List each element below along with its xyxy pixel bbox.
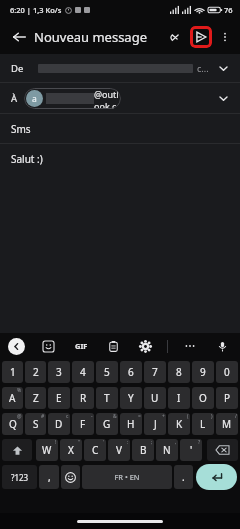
staticText: Nouveau message (34, 28, 147, 46)
button[interactable]: Masquer la barre d'outils (8, 338, 25, 355)
staticText: FR • EN (114, 472, 140, 482)
button[interactable]: N (156, 439, 178, 461)
button[interactable]: 1 (2, 361, 23, 383)
staticText: : (127, 439, 129, 446)
staticText: ? (198, 439, 201, 446)
button[interactable]: 6 (120, 361, 142, 383)
button[interactable]: Plus (180, 336, 200, 356)
staticText: H (127, 417, 135, 431)
button[interactable]: Plus d'options (214, 26, 236, 48)
button[interactable]: 0 (216, 361, 238, 383)
button[interactable]: W (36, 439, 58, 461)
button[interactable]: Entrée (196, 464, 237, 490)
staticText: , (175, 439, 177, 446)
button[interactable]: Emoji (61, 465, 80, 489)
staticText: ' (103, 439, 105, 446)
staticText: ; (151, 439, 153, 446)
button[interactable]: A (2, 387, 23, 409)
button[interactable]: P (216, 387, 238, 409)
staticText: / (235, 413, 237, 420)
staticText: U (151, 391, 159, 405)
staticText: Salut :) (11, 152, 43, 166)
button[interactable]: 4 (72, 361, 94, 383)
staticText: 1 (10, 365, 16, 379)
staticText: I (177, 391, 181, 405)
button[interactable]: À (0, 83, 240, 113)
staticText: - (91, 413, 93, 420)
staticText: " (78, 439, 81, 446)
staticText: , (48, 470, 51, 484)
staticText: E (56, 391, 62, 405)
button[interactable]: X (60, 439, 82, 461)
staticText: 4 (80, 365, 86, 379)
staticText: a (32, 93, 37, 105)
button[interactable]: D (48, 413, 70, 435)
button[interactable]: 3 (48, 361, 70, 383)
staticText: W (42, 443, 52, 457)
button[interactable]: Point (174, 465, 193, 489)
button[interactable]: Majuscule (2, 439, 32, 461)
button[interactable]: C (84, 439, 106, 461)
button[interactable]: U (144, 387, 166, 409)
button[interactable]: Paramètres (135, 336, 155, 356)
button[interactable]: De (0, 54, 240, 82)
button[interactable]: M (216, 413, 238, 435)
button[interactable]: 2 (25, 361, 46, 383)
button[interactable]: V (108, 439, 130, 461)
button[interactable]: G (96, 413, 118, 435)
staticText: ' (190, 443, 193, 457)
staticText: D (55, 417, 63, 431)
button[interactable]: L (192, 413, 214, 435)
button[interactable]: ' (180, 439, 202, 461)
button[interactable]: R (72, 387, 94, 409)
button[interactable]: O (192, 387, 214, 409)
button[interactable]: S (25, 413, 46, 435)
button[interactable]: 5 (96, 361, 118, 383)
staticText: ) (211, 413, 213, 420)
staticText: V (116, 443, 122, 457)
staticText: 0 (224, 365, 230, 379)
button[interactable]: I (168, 387, 190, 409)
staticText: @outlook.com (94, 88, 121, 109)
staticText: c (66, 413, 69, 420)
staticText: . (182, 470, 185, 484)
staticText: 76 (224, 5, 233, 15)
button[interactable]: GIF (71, 336, 91, 356)
button[interactable]: Joindre un fichier (162, 25, 186, 49)
button[interactable]: B (132, 439, 154, 461)
button[interactable]: Salut :) (0, 144, 240, 173)
staticText: R (80, 391, 87, 405)
button[interactable]: E (48, 387, 70, 409)
button[interactable]: Presse-papiers (103, 336, 123, 356)
staticText: C (92, 443, 99, 457)
staticText: 9 (200, 365, 206, 379)
button[interactable]: T (96, 387, 118, 409)
staticText: c... (197, 62, 209, 74)
button[interactable]: Z (25, 387, 46, 409)
staticText: 7 (152, 365, 158, 379)
staticText: F (80, 417, 86, 431)
button[interactable]: Q (2, 413, 23, 435)
button[interactable]: Retour (6, 24, 32, 50)
button[interactable]: Chiffres et symboles (2, 465, 37, 489)
button[interactable]: Y (120, 387, 142, 409)
button[interactable]: J (144, 413, 166, 435)
button[interactable]: Sms (0, 114, 240, 143)
staticText: G (103, 417, 111, 431)
staticText: S (33, 417, 39, 431)
button[interactable]: Saisie vocale (212, 336, 232, 356)
button[interactable]: Virgule (39, 465, 59, 489)
staticText: 6 (128, 365, 134, 379)
button[interactable]: 8 (168, 361, 190, 383)
button[interactable]: K (168, 413, 190, 435)
button[interactable]: H (120, 413, 142, 435)
staticText: ?123 (11, 472, 29, 483)
button[interactable]: 9 (192, 361, 214, 383)
button[interactable]: F (72, 413, 94, 435)
button[interactable]: Envoyer (188, 24, 214, 50)
button[interactable]: 7 (144, 361, 166, 383)
button[interactable]: Supprimer (207, 439, 238, 461)
button[interactable]: Espace (82, 465, 172, 489)
button[interactable]: Autocollants (38, 336, 58, 356)
button[interactable]: a (24, 88, 121, 109)
